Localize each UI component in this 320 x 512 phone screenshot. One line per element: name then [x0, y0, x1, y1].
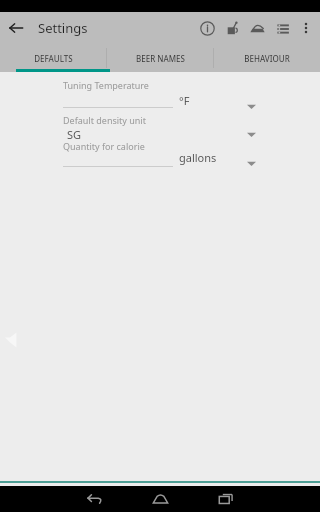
staticText: Tuning Temperature [63, 79, 149, 91]
button[interactable]: Select calorie quantity unit [240, 152, 262, 174]
button[interactable]: BEHAVIOUR [214, 44, 320, 72]
button[interactable]: Hydrometer [245, 16, 270, 41]
button[interactable]: Recent apps [204, 486, 248, 512]
staticText: °F [179, 93, 190, 108]
staticText: SG [67, 127, 82, 142]
button[interactable]: Home [138, 486, 182, 512]
staticText: BEER NAMES [136, 53, 185, 64]
button[interactable]: More options [295, 17, 317, 39]
staticText: Default density unit [63, 114, 146, 126]
staticText: gallons [179, 150, 217, 165]
staticText: Quantity for calorie [63, 140, 145, 152]
button[interactable]: Navigate up [2, 14, 30, 42]
staticText: Settings [38, 19, 88, 37]
button[interactable]: Recipes [270, 16, 295, 41]
button[interactable]: Back [72, 486, 116, 512]
button[interactable]: DEFAULTS [0, 44, 106, 72]
button[interactable]: BEER NAMES [107, 44, 213, 72]
button[interactable]: Select tuning temperature unit [240, 95, 262, 117]
staticText: DEFAULTS [34, 53, 73, 64]
button[interactable]: Mash tool [220, 16, 245, 41]
button[interactable]: Information [195, 16, 220, 41]
button[interactable]: Select default density unit [240, 123, 262, 145]
staticText: BEHAVIOUR [244, 53, 290, 64]
